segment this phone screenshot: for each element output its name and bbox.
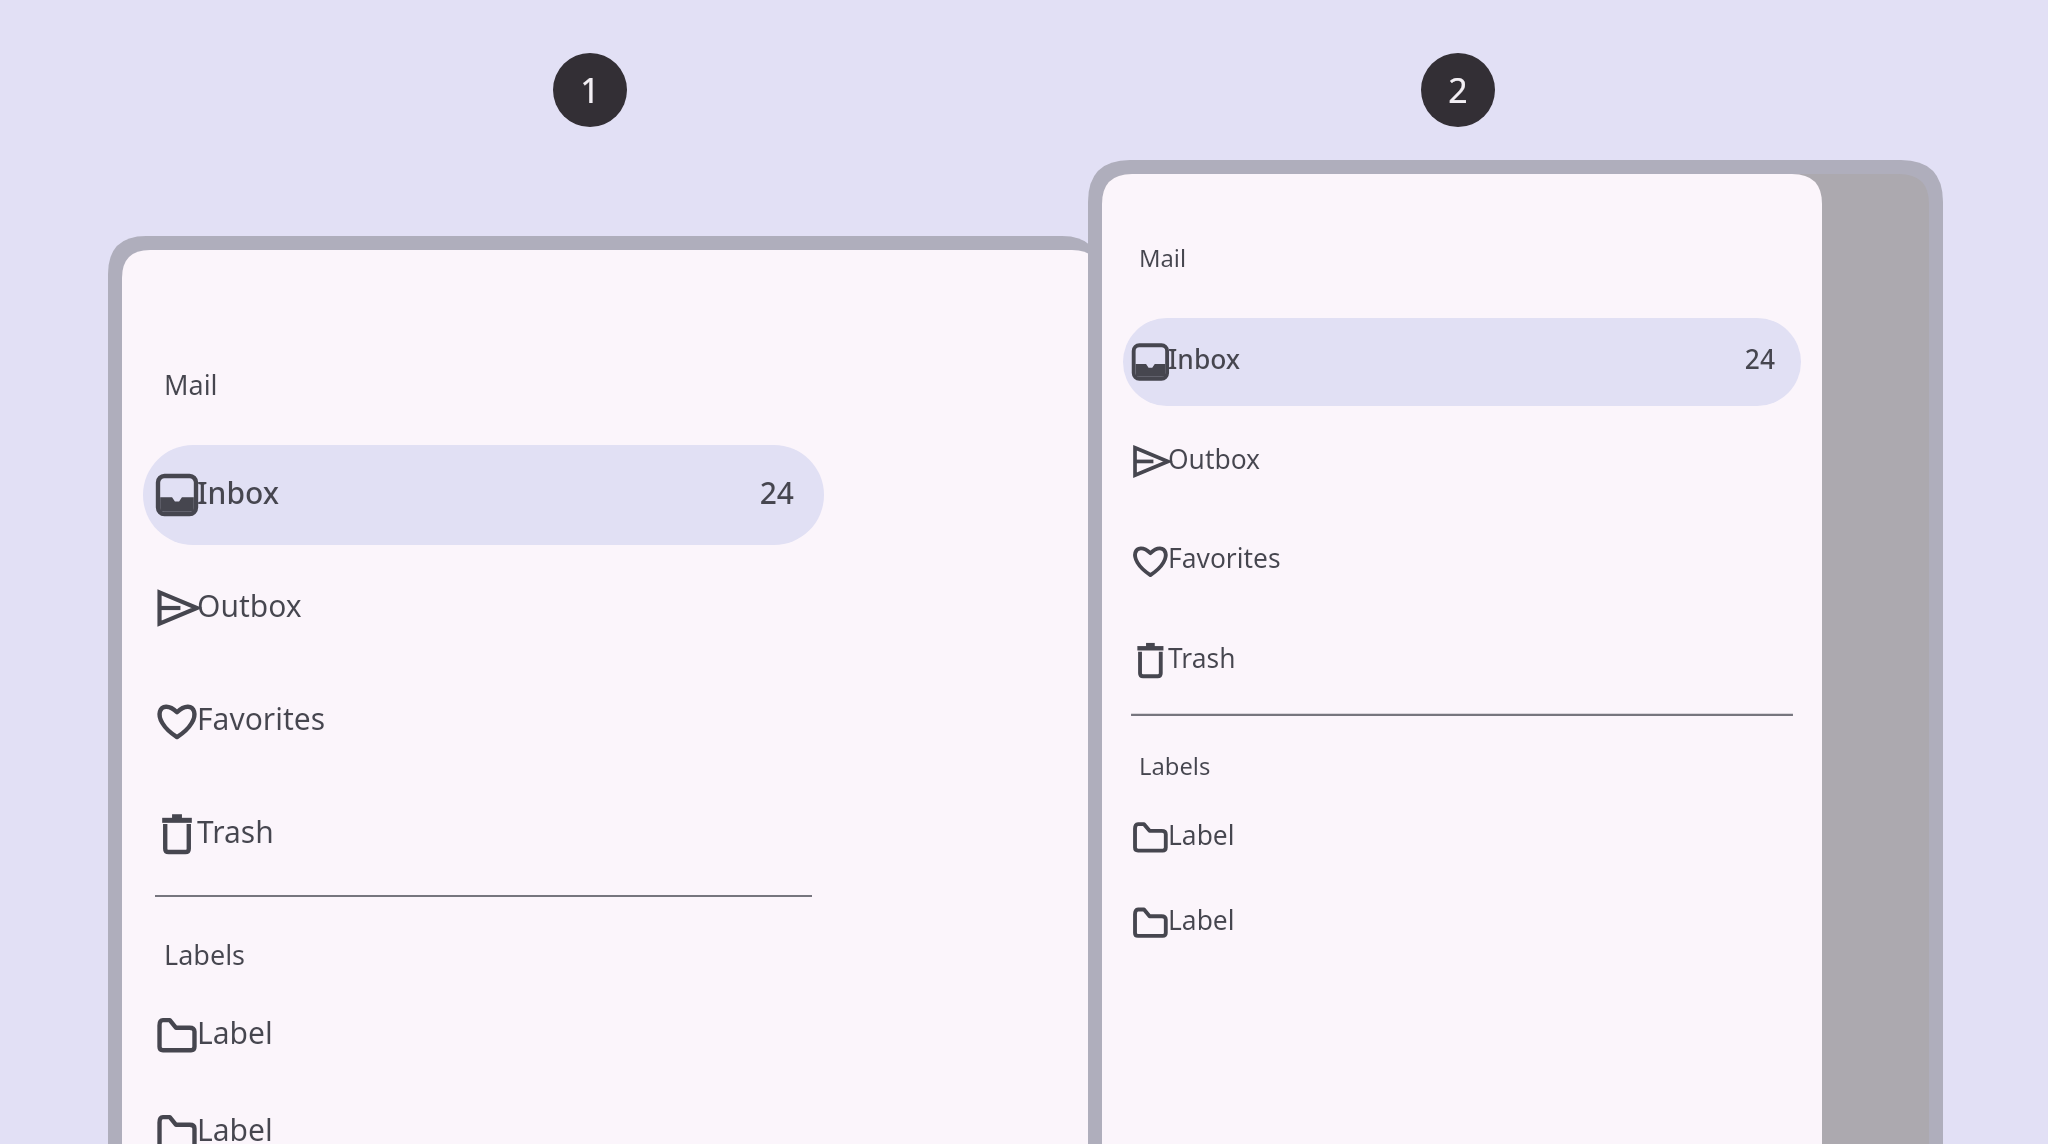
staticText: Labels [164,936,246,973]
staticText: Label [197,1109,273,1144]
button[interactable]: Inbox [1123,318,1801,406]
staticText: Favorites [1168,540,1281,576]
staticText: Labels [1139,750,1211,782]
button[interactable]: Trash [143,784,824,884]
staticText: Mail [1139,242,1187,274]
staticText: 24 [674,472,794,520]
staticText: Trash [197,811,274,852]
button[interactable]: Favorites [143,671,824,771]
button[interactable]: Trash [1123,616,1801,704]
button[interactable]: Step 1 [553,53,627,127]
button[interactable]: Label [1123,879,1801,967]
staticText: Favorites [197,698,326,739]
button[interactable]: Label [143,985,824,1085]
button[interactable]: Inbox [143,445,824,545]
staticText: 2 [1448,67,1468,113]
button[interactable]: Step 2 [1421,53,1495,127]
staticText: Mail [164,366,218,403]
staticText: 24 [1655,341,1775,383]
button[interactable]: Label [143,1082,824,1144]
staticText: Inbox [1168,341,1241,377]
staticText: 1 [580,67,600,113]
staticText: Trash [1168,640,1236,676]
staticText: Outbox [197,585,302,626]
button[interactable]: Favorites [1123,517,1801,605]
staticText: Inbox [197,472,280,513]
staticText: Label [1168,902,1235,938]
staticText: Label [197,1012,273,1053]
button[interactable]: Label [1123,793,1801,881]
staticText: Outbox [1168,441,1261,477]
button[interactable]: Outbox [143,558,824,658]
staticText: Label [1168,817,1235,853]
button[interactable]: Outbox [1123,417,1801,505]
